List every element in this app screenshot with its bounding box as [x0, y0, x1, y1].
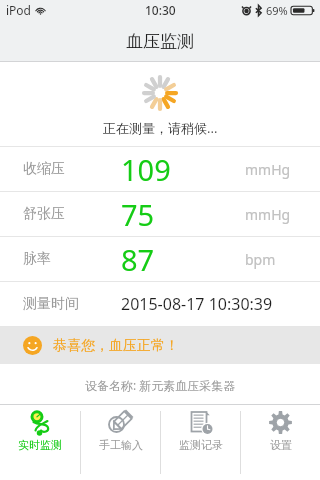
staticText: 手工输入 — [99, 438, 143, 452]
staticText: 舒张压 — [23, 205, 65, 223]
staticText: 监测记录 — [179, 438, 223, 452]
staticText: 恭喜您，血压正常！ — [53, 337, 179, 355]
button[interactable]: 舒张压 — [0, 192, 320, 236]
button[interactable]: 脉率 — [0, 237, 320, 281]
staticText: 实时监测 — [18, 438, 62, 452]
button[interactable]: 监测记录 — [161, 405, 240, 480]
staticText: mmHg — [245, 160, 291, 179]
staticText: 109 — [121, 150, 171, 189]
staticText: mmHg — [245, 205, 291, 224]
staticText: 正在测量，请稍候... — [103, 119, 218, 137]
staticText: 脉率 — [23, 250, 51, 268]
staticText: 87 — [121, 240, 155, 279]
button[interactable]: 设置 — [241, 405, 320, 480]
button[interactable]: 恭喜您，血压正常！ — [0, 327, 320, 364]
staticText: 2015-08-17 10:30:39 — [121, 293, 273, 315]
button[interactable]: 手工输入 — [81, 405, 160, 480]
staticText: 血压监测 — [126, 31, 194, 52]
staticText: 10:30 — [145, 2, 176, 18]
staticText: iPod — [6, 2, 31, 18]
staticText: 69% — [266, 3, 288, 18]
button[interactable]: 测量时间 — [0, 282, 320, 326]
staticText: 收缩压 — [23, 160, 65, 178]
staticText: 设置 — [270, 438, 292, 452]
staticText: 设备名称: 新元素血压采集器 — [85, 377, 236, 393]
staticText: 测量时间 — [23, 295, 79, 313]
button[interactable]: 收缩压 — [0, 147, 320, 191]
staticText: 75 — [121, 195, 155, 234]
staticText: bpm — [245, 250, 276, 269]
button[interactable]: 实时监测 — [0, 405, 80, 480]
